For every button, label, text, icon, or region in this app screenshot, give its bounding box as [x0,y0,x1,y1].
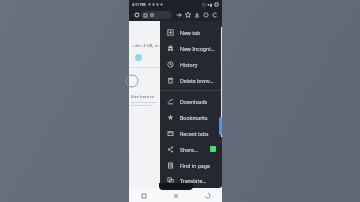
button[interactable]: Translate... [160,173,222,188]
staticText: Recent tabs [180,130,216,137]
staticText: Bookmarks [180,114,216,121]
button[interactable]: Downloads [160,93,222,109]
staticText: History [180,61,216,68]
staticText: Share... [180,146,210,153]
button[interactable]: Bookmarks [160,109,222,125]
button[interactable]: Delete browsing data [160,72,222,88]
staticText: New Incognito tab [180,45,216,52]
staticText: Find in page [180,162,216,169]
staticText: files here to [131,94,155,100]
button[interactable]: Recents [139,191,148,200]
button[interactable]: Back [203,191,212,200]
button[interactable] [141,11,172,19]
staticText: ...der: 4 GB, m [131,43,159,49]
button[interactable]: Recent tabs [160,125,222,141]
button[interactable]: Forward [174,10,183,19]
button[interactable]: Download page [192,10,201,19]
staticText: ⬛ ▾ ▮ [202,2,213,7]
staticText: 4:11 PM [132,2,146,7]
staticText: Translate... [180,177,216,184]
button[interactable]: New tab [160,24,222,40]
button[interactable]: Page info [201,10,210,19]
staticText: Downloads [180,98,216,105]
staticText: Delete browsing data [180,77,216,84]
button[interactable]: Share... [160,141,222,157]
button[interactable]: History [160,56,222,72]
button[interactable]: Home [132,10,141,19]
button[interactable]: Bookmark [183,10,192,19]
button[interactable]: New Incognito tab [160,40,222,56]
button[interactable]: Home [171,191,180,200]
button[interactable]: Find in page [160,157,222,173]
button[interactable]: Reload [210,10,219,19]
staticText: New tab [180,29,216,36]
